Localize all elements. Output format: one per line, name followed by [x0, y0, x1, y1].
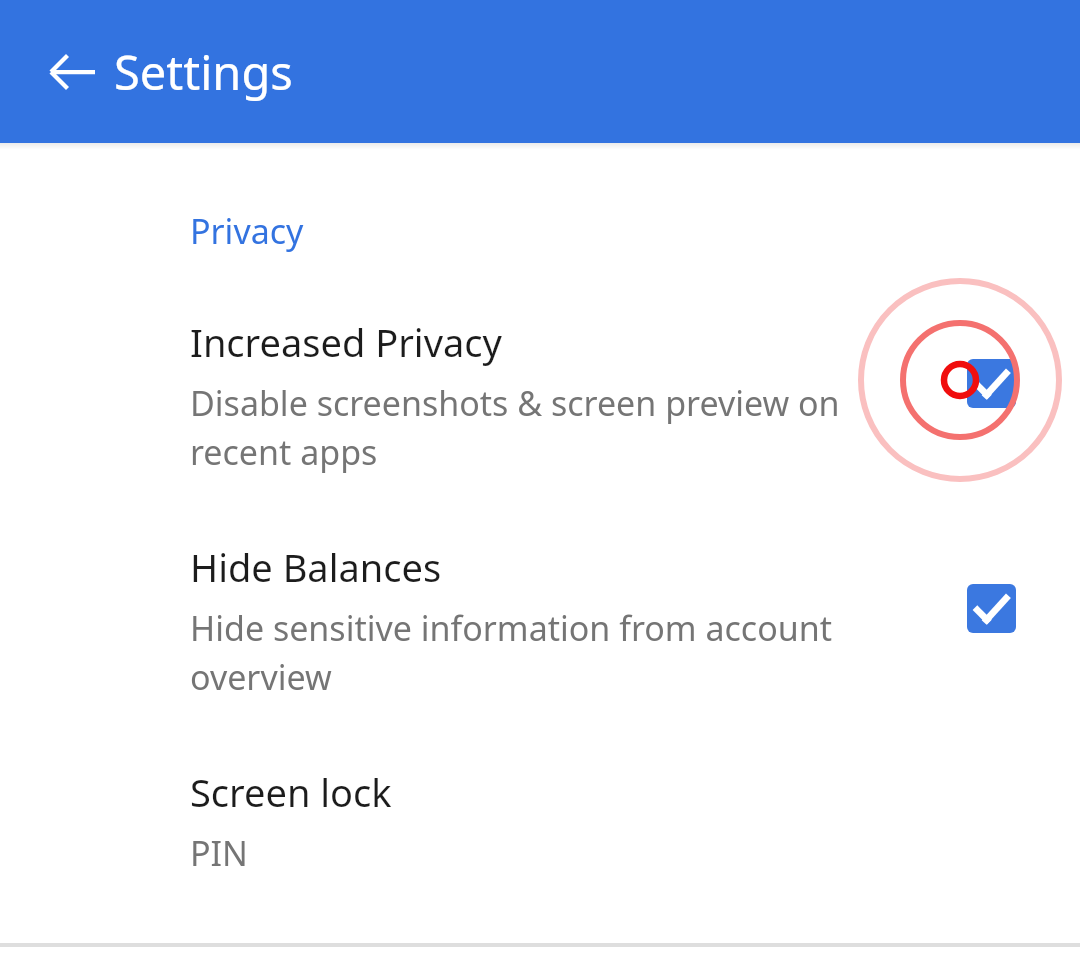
staticText: Screen lock — [190, 766, 392, 818]
staticText: Disable screenshots & screen preview on … — [190, 380, 840, 475]
staticText: Privacy — [190, 208, 304, 254]
staticText: PIN — [190, 830, 248, 876]
staticText: Settings — [114, 40, 293, 104]
button[interactable]: Back — [45, 44, 101, 100]
button[interactable]: Toggle Increased Privacy — [962, 354, 1020, 412]
button[interactable]: Screen lock — [0, 766, 1080, 876]
button[interactable]: Hide Balances — [0, 541, 1080, 700]
staticText: Hide Balances — [190, 541, 442, 593]
staticText: Hide sensitive information from account … — [190, 605, 833, 700]
button[interactable]: Toggle Hide Balances — [962, 579, 1020, 637]
staticText: Increased Privacy — [190, 316, 502, 368]
button[interactable]: Increased Privacy — [0, 316, 1080, 475]
